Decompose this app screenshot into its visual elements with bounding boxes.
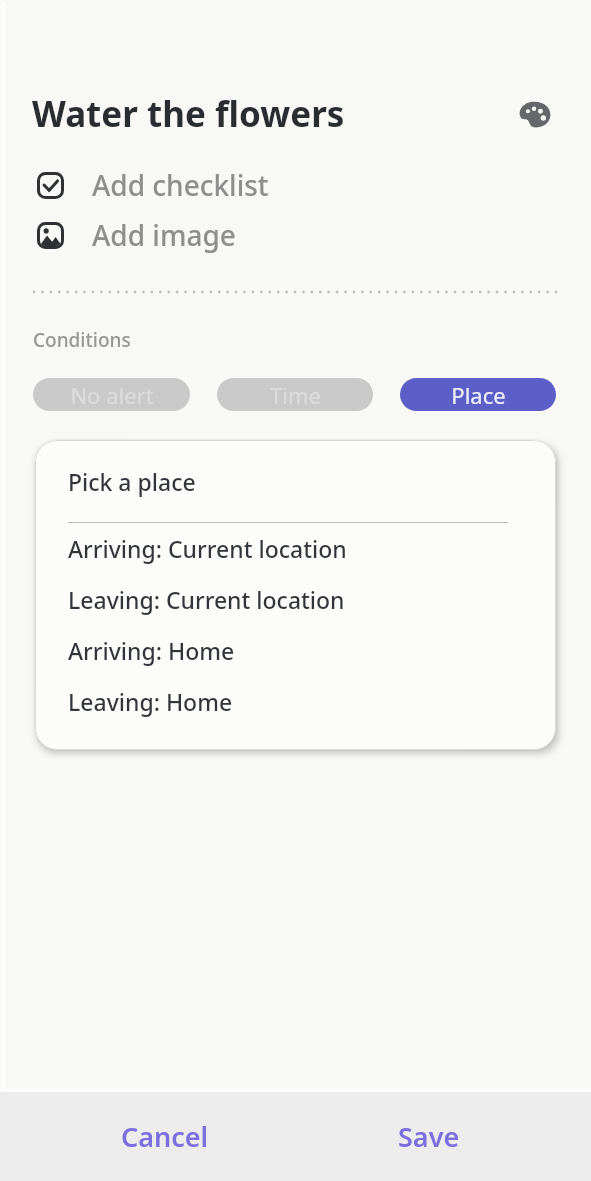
button[interactable]: Add checklist	[0, 161, 591, 209]
button[interactable]: Save	[376, 1106, 482, 1167]
button[interactable]: Add image	[0, 211, 591, 259]
staticText: Arriving: Home	[68, 635, 235, 666]
staticText: Leaving: Current location	[68, 584, 345, 615]
button[interactable]: Arriving: Home	[35, 625, 556, 676]
button[interactable]: Time	[217, 378, 373, 411]
staticText: Water the flowers	[32, 90, 345, 138]
button[interactable]: Cancel	[99, 1106, 231, 1167]
staticText: Add checklist	[92, 166, 269, 204]
button[interactable]: Leaving: Home	[35, 676, 556, 727]
button[interactable]: Arriving: Current location	[35, 523, 556, 574]
staticText: Add image	[92, 216, 236, 254]
staticText: Conditions	[33, 327, 131, 353]
button[interactable]: Leaving: Current location	[35, 574, 556, 625]
staticText: Leaving: Home	[68, 686, 233, 717]
staticText: Time	[270, 380, 321, 410]
button[interactable]: Change color	[513, 92, 557, 136]
staticText: Cancel	[121, 1118, 209, 1155]
staticText: Place	[451, 380, 506, 410]
button[interactable]: No alert	[33, 378, 190, 411]
staticText: Save	[398, 1118, 460, 1155]
staticText: Arriving: Current location	[68, 533, 347, 564]
staticText: Pick a place	[68, 466, 196, 497]
button[interactable]: Place	[400, 378, 556, 411]
staticText: No alert	[70, 380, 154, 410]
